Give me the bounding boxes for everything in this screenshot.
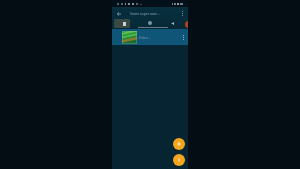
staticText: Some super awesome video [130,11,160,16]
button[interactable]: More options [178,9,187,18]
button[interactable]: Create [173,154,185,166]
button[interactable]: Volume [169,19,177,27]
staticText: Video name [139,35,151,39]
button[interactable]: Play [148,21,152,25]
button[interactable]: Back [114,9,123,18]
button[interactable]: Video name [112,29,188,45]
button[interactable]: Add [173,138,185,150]
button[interactable]: Item options [179,33,188,42]
button[interactable]: Expand player [114,19,130,28]
